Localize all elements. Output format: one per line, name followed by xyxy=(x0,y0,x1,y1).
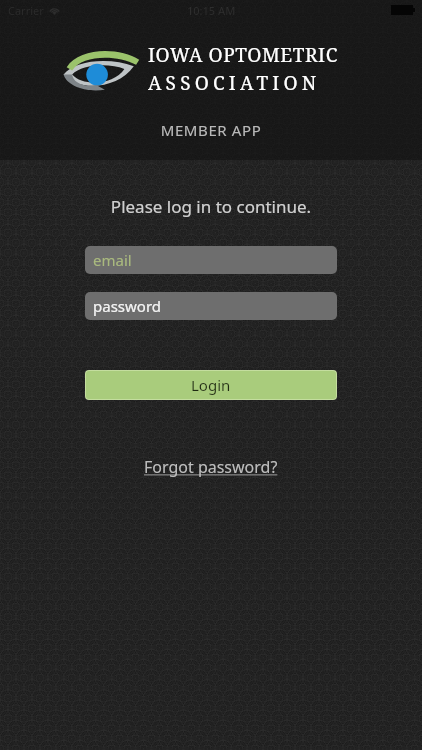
staticText: Carrier xyxy=(8,3,44,18)
staticText: Login xyxy=(191,375,231,395)
other: Battery xyxy=(391,5,415,15)
staticText: ASSOCIATION xyxy=(148,70,321,96)
button[interactable]: Forgot password? xyxy=(134,452,288,482)
staticText: 10:15 AM xyxy=(187,3,236,18)
button[interactable]: Login xyxy=(86,371,336,399)
staticText: Please log in to continue. xyxy=(0,195,422,218)
button[interactable]: email xyxy=(85,246,337,274)
other: Iowa Optometric Association logo xyxy=(62,46,140,92)
staticText: Forgot password? xyxy=(144,456,278,478)
button[interactable]: password xyxy=(85,292,337,320)
staticText: password xyxy=(93,296,161,316)
staticText: IOWA OPTOMETRIC xyxy=(148,42,338,68)
staticText: email xyxy=(93,250,132,270)
staticText: MEMBER APP xyxy=(0,120,422,140)
